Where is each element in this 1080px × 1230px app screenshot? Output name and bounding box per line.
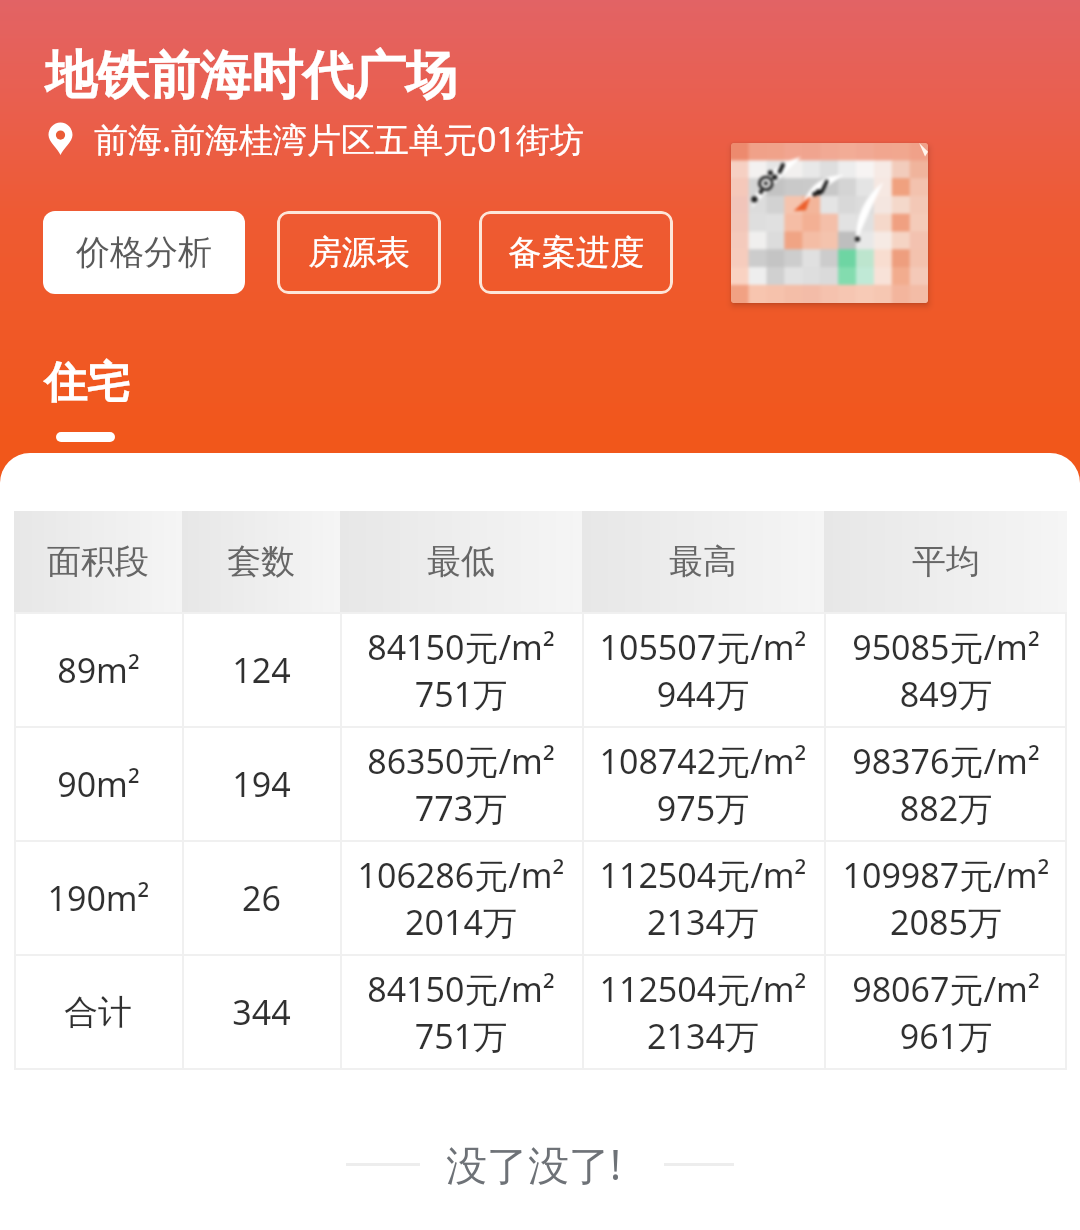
staticText: 90m²	[57, 761, 140, 807]
staticText: 前海.前海桂湾片区五单元01街坊	[94, 116, 585, 162]
button[interactable]: 楼盘照片	[731, 143, 928, 303]
staticText: 98067元/m² 961万	[852, 966, 1040, 1059]
staticText: 84150元/m² 751万	[367, 624, 555, 717]
staticText: 面积段	[47, 540, 149, 583]
staticText: 108742元/m² 975万	[599, 738, 807, 831]
staticText: 190m²	[47, 875, 150, 921]
staticText: 套数	[227, 540, 295, 583]
staticText: 344	[232, 989, 291, 1035]
staticText: 合计	[64, 991, 132, 1034]
staticText: 地铁前海时代广场	[45, 43, 457, 108]
staticText: 84150元/m² 751万	[367, 966, 555, 1059]
staticText: 105507元/m² 944万	[599, 624, 807, 717]
staticText: 109987元/m² 2085万	[842, 852, 1050, 945]
staticText: 26	[242, 875, 281, 921]
staticText: 89m²	[57, 647, 140, 693]
staticText: 最高	[669, 540, 737, 583]
button[interactable]: 住宅	[30, 345, 143, 458]
staticText: 112504元/m² 2134万	[599, 852, 807, 945]
staticText: 95085元/m² 849万	[852, 624, 1040, 717]
staticText: 最低	[427, 540, 495, 583]
staticText: 194	[232, 761, 291, 807]
staticText: 没了没了!	[446, 1136, 622, 1192]
button[interactable]: 备案进度	[479, 211, 673, 294]
staticText: 平均	[912, 540, 980, 583]
staticText: 124	[232, 647, 291, 693]
staticText: 112504元/m² 2134万	[599, 966, 807, 1059]
button[interactable]: 价格分析	[43, 211, 245, 294]
staticText: 房源表	[308, 231, 410, 274]
button[interactable]: 房源表	[277, 211, 441, 294]
staticText: 价格分析	[76, 231, 212, 274]
staticText: 备案进度	[508, 231, 644, 274]
staticText: 98376元/m² 882万	[852, 738, 1040, 831]
staticText: 住宅	[44, 356, 130, 410]
staticText: 86350元/m² 773万	[367, 738, 555, 831]
staticText: 106286元/m² 2014万	[357, 852, 565, 945]
